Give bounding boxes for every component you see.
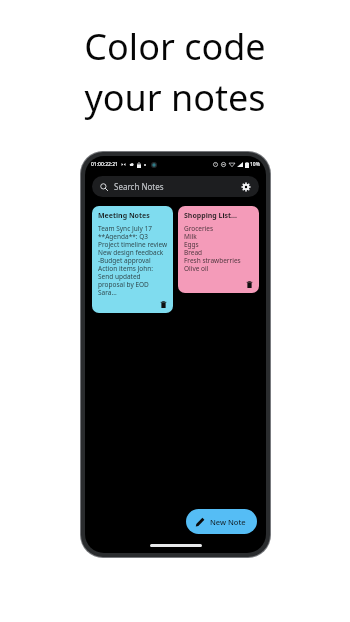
button[interactable]: Delete Shopping List xyxy=(245,280,254,289)
button[interactable]: Settings xyxy=(240,181,251,192)
staticText: 01:00:22:21 xyxy=(91,161,118,168)
staticText: Shopping List... xyxy=(184,211,237,221)
button[interactable]: New Note xyxy=(186,509,257,534)
staticText: New Note xyxy=(210,517,246,527)
staticText: Groceries Milk Eggs Bread Fresh strawber… xyxy=(184,224,254,273)
other: Search xyxy=(100,183,108,191)
staticText: 10% xyxy=(250,161,260,168)
staticText: Meeting Notes xyxy=(98,211,150,221)
staticText: Search Notes xyxy=(114,181,164,192)
staticText: your notes xyxy=(84,73,266,122)
button[interactable]: Shopping List... xyxy=(178,206,259,293)
button[interactable]: Delete Meeting Notes xyxy=(159,300,168,309)
staticText: Color code xyxy=(84,22,266,71)
staticText: Team Sync July 17 **Agenda**: Q3 Project… xyxy=(98,224,168,297)
button[interactable]: Meeting Notes xyxy=(92,206,173,313)
button[interactable]: Search xyxy=(92,176,259,197)
